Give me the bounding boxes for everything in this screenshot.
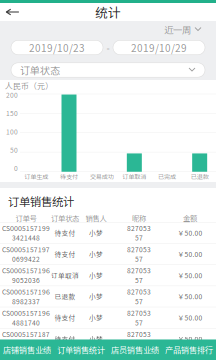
staticText: 统计: [95, 3, 121, 21]
button[interactable]: 2019/10/29: [113, 40, 205, 55]
staticText: 订单取消: [51, 270, 79, 280]
staticText: 9052036: [12, 275, 40, 285]
staticText: 店员销售业绩: [111, 344, 159, 356]
staticText: 4881740: [12, 318, 40, 327]
staticText: 昵称: [132, 213, 146, 223]
staticText: CS0005157196: [2, 266, 50, 275]
staticText: 订单取消: [122, 172, 146, 181]
staticText: 产品销售排行: [165, 344, 213, 356]
staticText: 827053: [127, 287, 151, 296]
button[interactable]: 产品销售排行: [162, 339, 216, 360]
staticText: 待支付: [54, 334, 75, 344]
button[interactable]: 订单状态: [11, 63, 205, 77]
staticText: 827053: [127, 223, 151, 233]
staticText: 827053: [127, 308, 151, 318]
staticText: 0699422: [12, 254, 40, 264]
staticText: 待支付: [54, 249, 75, 259]
staticText: 57: [135, 296, 143, 306]
staticText: 订单销售统计: [57, 344, 105, 356]
staticText: ￥50.00: [177, 249, 202, 259]
staticText: 小梦: [89, 292, 103, 301]
staticText: 订单状态: [51, 213, 79, 223]
staticText: 2019/10/23: [29, 40, 85, 55]
staticText: 订单状态: [20, 63, 60, 77]
staticText: ￥50.00: [177, 270, 202, 280]
staticText: 8982337: [12, 296, 40, 306]
staticText: 小梦: [89, 228, 103, 238]
staticText: 金额: [183, 213, 197, 223]
staticText: 已退款: [54, 292, 75, 301]
staticText: CS0005157197: [2, 244, 50, 254]
staticText: 小梦: [89, 334, 103, 344]
staticText: 200: [6, 90, 18, 100]
staticText: ￥50.00: [177, 228, 202, 238]
staticText: 小梦: [89, 313, 103, 322]
button[interactable]: 订单销售统计: [54, 339, 108, 360]
staticText: 待支付: [54, 313, 75, 322]
staticText: ￥50.00: [177, 292, 202, 301]
staticText: 近一周: [164, 23, 191, 36]
staticText: 150: [6, 108, 18, 118]
staticText: 1234567: [12, 339, 40, 349]
staticText: 订单生成: [24, 172, 48, 181]
staticText: 827053: [127, 329, 151, 339]
staticText: 57: [135, 254, 143, 264]
staticText: CS0005157199: [2, 223, 50, 233]
staticText: 3421448: [12, 233, 40, 242]
staticText: 订单号: [15, 213, 36, 223]
staticText: 订单销售统计: [8, 193, 74, 209]
staticText: 交易成功: [90, 172, 114, 181]
staticText: 已完成: [158, 172, 176, 181]
staticText: CS0005157196: [2, 287, 50, 296]
staticText: 待支付: [60, 172, 78, 181]
button[interactable]: Back: [0, 3, 25, 21]
staticText: 2019/10/29: [131, 40, 187, 55]
staticText: 57: [135, 339, 143, 349]
staticText: 人民币（元）: [5, 80, 53, 91]
staticText: 57: [135, 233, 143, 242]
staticText: 小梦: [89, 249, 103, 259]
staticText: -: [106, 41, 109, 54]
button[interactable]: 店铺销售业绩: [0, 339, 54, 360]
staticText: 已退款: [191, 172, 209, 181]
staticText: CS0005157196: [2, 308, 50, 318]
staticText: 57: [135, 318, 143, 327]
staticText: 销售人: [85, 213, 106, 223]
staticText: 100: [6, 127, 18, 136]
staticText: 0: [14, 163, 18, 173]
staticText: ￥50.00: [177, 334, 202, 344]
staticText: 827053: [127, 244, 151, 254]
button[interactable]: 2019/10/23: [11, 40, 103, 55]
button[interactable]: 近一周: [164, 21, 202, 38]
staticText: 57: [135, 275, 143, 285]
staticText: CS0005157187: [2, 329, 50, 339]
staticText: ￥50.00: [177, 313, 202, 322]
button[interactable]: 店员销售业绩: [108, 339, 162, 360]
staticText: 店铺销售业绩: [3, 344, 51, 356]
staticText: 待支付: [54, 228, 75, 238]
staticText: 小梦: [89, 270, 103, 280]
staticText: 827053: [127, 266, 151, 275]
staticText: 50: [10, 145, 18, 155]
